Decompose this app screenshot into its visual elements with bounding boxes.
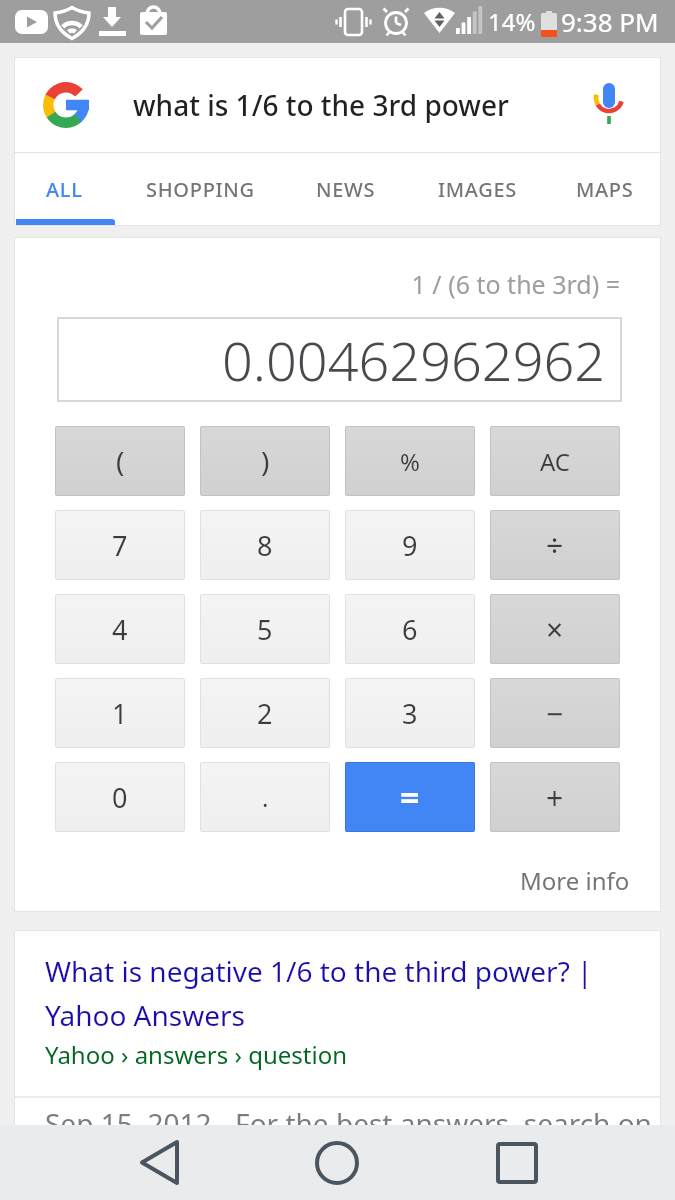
staticText: NEWS [316, 176, 376, 203]
button[interactable]: 6 [345, 594, 475, 664]
staticText: ALL [46, 176, 83, 203]
staticText: ) [261, 442, 270, 480]
button[interactable]: ÷ [490, 510, 620, 580]
staticText: × [546, 609, 564, 650]
button[interactable]: IMAGES [407, 153, 549, 226]
button[interactable]: 8 [200, 510, 330, 580]
staticText: 5 [257, 611, 273, 648]
staticText: what is 1/6 to the 3rd power [133, 86, 509, 124]
button[interactable]: = [345, 762, 475, 832]
staticText: 1 [112, 695, 128, 732]
button[interactable]: 5 [200, 594, 330, 664]
button[interactable]: 9 [345, 510, 475, 580]
staticText: SHOPPING [146, 176, 255, 203]
staticText: 1 / (6 to the 3rd) = [14, 267, 620, 301]
staticText: IMAGES [438, 176, 518, 203]
button[interactable] [476, 1125, 556, 1200]
staticText: + [546, 777, 564, 818]
button[interactable]: What is negative 1/6 to the third power?… [45, 952, 593, 1034]
button[interactable]: 3 [345, 678, 475, 748]
button[interactable]: AC [490, 426, 620, 496]
button[interactable]: × [490, 594, 620, 664]
staticText: 2 [257, 695, 273, 732]
button[interactable]: 7 [55, 510, 185, 580]
staticText: 9 [402, 527, 418, 564]
button[interactable]: More info [520, 864, 630, 897]
button[interactable] [297, 1125, 377, 1200]
staticText: AC [540, 445, 571, 478]
staticText: = [400, 774, 420, 820]
button[interactable]: . [200, 762, 330, 832]
button[interactable]: + [490, 762, 620, 832]
button[interactable] [593, 83, 625, 127]
button[interactable]: ( [55, 426, 185, 496]
staticText: 9:38 PM [561, 4, 659, 39]
staticText: 3 [402, 695, 418, 732]
staticText: 6 [402, 611, 418, 648]
staticText: Sep 15, 2012 - For the best answers, sea… [45, 1104, 652, 1142]
staticText: What is negative 1/6 to the third power?… [45, 952, 593, 1034]
staticText: ( [116, 442, 125, 480]
staticText: 8 [257, 527, 273, 564]
staticText: 0.00462962962 [222, 323, 606, 397]
button[interactable]: NEWS [285, 153, 407, 226]
staticText: . [262, 781, 269, 814]
staticText: Yahoo › answers › question [45, 1038, 347, 1071]
button[interactable]: SHOPPING [115, 153, 285, 226]
button[interactable]: 4 [55, 594, 185, 664]
button[interactable]: ALL [14, 153, 115, 226]
staticText: ÷ [546, 525, 564, 566]
button[interactable]: 2 [200, 678, 330, 748]
button[interactable]: − [490, 678, 620, 748]
staticText: 4 [112, 611, 128, 648]
button[interactable] [120, 1125, 200, 1200]
staticText: 7 [112, 527, 128, 564]
staticText: 0 [112, 779, 128, 816]
button[interactable]: % [345, 426, 475, 496]
button[interactable]: ) [200, 426, 330, 496]
staticText: − [546, 693, 564, 734]
staticText: MAPS [576, 176, 634, 203]
button[interactable]: 0 [55, 762, 185, 832]
staticText: 14% [488, 5, 536, 38]
button[interactable]: 1 [55, 678, 185, 748]
staticText: % [400, 445, 420, 478]
staticText: More info [520, 864, 630, 897]
button[interactable]: MAPS [549, 153, 661, 226]
button[interactable]: what is 1/6 to the 3rd power [14, 57, 661, 152]
